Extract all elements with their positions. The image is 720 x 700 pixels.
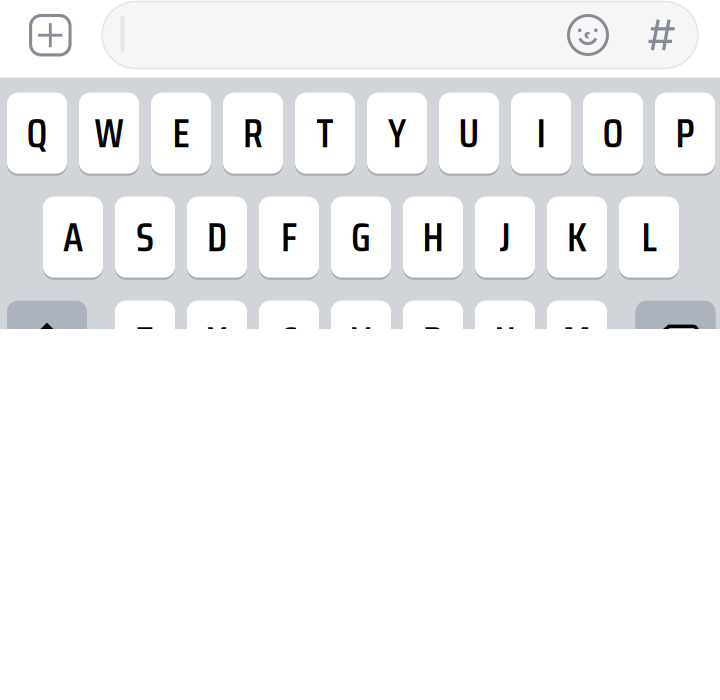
button[interactable]: W	[79, 93, 139, 174]
staticText: D	[207, 205, 227, 269]
button[interactable]: A	[43, 197, 103, 278]
button[interactable]: P	[655, 93, 715, 174]
button[interactable]: S	[115, 197, 175, 278]
staticText: I	[536, 101, 545, 165]
button[interactable]: T	[295, 93, 355, 174]
staticText: U	[458, 101, 479, 165]
button[interactable]: Add attachment	[25, 10, 75, 60]
staticText: O	[602, 101, 623, 165]
button[interactable]: Delete	[635, 301, 715, 382]
staticText: Q	[26, 101, 47, 165]
button[interactable]: K	[547, 197, 607, 278]
button[interactable]: G	[331, 197, 391, 278]
button[interactable]: Emoji	[564, 11, 612, 59]
staticText: C	[281, 309, 297, 373]
button[interactable]: C	[259, 301, 319, 382]
staticText: R	[243, 101, 263, 165]
staticText: Y	[388, 101, 406, 165]
staticText: K	[567, 205, 587, 269]
button[interactable]: Q	[7, 93, 67, 174]
staticText: J	[499, 205, 510, 269]
staticText: T	[316, 101, 333, 165]
button[interactable]: V	[331, 301, 391, 382]
button[interactable]: O	[583, 93, 643, 174]
button[interactable]: E	[151, 93, 211, 174]
staticText: H	[422, 205, 443, 269]
button[interactable]: F	[259, 197, 319, 278]
button[interactable]: N	[475, 301, 535, 382]
button[interactable]: U	[439, 93, 499, 174]
button[interactable]: H	[403, 197, 463, 278]
staticText: F	[281, 205, 297, 269]
button[interactable]: R	[223, 93, 283, 174]
button[interactable]: D	[187, 197, 247, 278]
button[interactable]: Shift	[7, 301, 87, 382]
button[interactable]: X	[187, 301, 247, 382]
staticText: M	[563, 309, 591, 373]
staticText: S	[136, 205, 154, 269]
button[interactable]: J	[475, 197, 535, 278]
staticText: N	[494, 309, 515, 373]
button[interactable]: B	[403, 301, 463, 382]
button[interactable]: Stickers	[640, 11, 684, 59]
button[interactable]: L	[619, 197, 679, 278]
button[interactable]: Y	[367, 93, 427, 174]
staticText: L	[641, 205, 656, 269]
button[interactable]: M	[547, 301, 607, 382]
button[interactable]: I	[511, 93, 571, 174]
staticText: W	[94, 101, 123, 165]
staticText: B	[423, 309, 443, 373]
staticText: A	[63, 205, 83, 269]
staticText: E	[172, 101, 189, 165]
staticText: V	[351, 309, 370, 373]
staticText: Z	[136, 309, 154, 373]
button[interactable]: Z	[115, 301, 175, 382]
staticText: X	[207, 309, 227, 373]
staticText: G	[351, 205, 371, 269]
staticText: P	[675, 101, 694, 165]
